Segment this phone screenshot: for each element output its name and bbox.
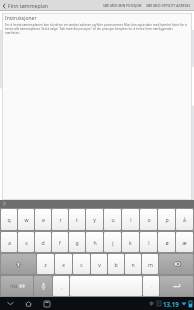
staticText: Instruksjoner [5,15,37,22]
button[interactable]: Skjul tastatur [6,299,15,308]
button[interactable]: i [122,209,139,230]
button[interactable]: h [86,232,103,252]
staticText: b [114,261,118,268]
button[interactable]: Flere forslag [0,200,8,207]
staticText: k [129,239,132,246]
staticText: o [147,216,151,223]
staticText: x [62,261,65,268]
staticText: v [98,261,101,268]
staticText: a [8,239,11,246]
button[interactable]: å [176,209,193,230]
button[interactable]: p [158,209,175,230]
button[interactable]: SØK MED MIN POSISJON [101,0,144,11]
button[interactable]: b [108,254,124,274]
button[interactable] [70,276,142,296]
button[interactable]: y [86,209,103,230]
button[interactable]: o [140,209,157,230]
button[interactable]: v [91,254,107,274]
button[interactable]: Enter [160,276,193,296]
staticText: w [24,216,29,223]
button[interactable]: g [69,232,85,252]
staticText: g [75,239,79,246]
button[interactable]: Oversikt [42,299,51,308]
button[interactable]: w [18,209,34,230]
staticText: i [130,216,132,223]
staticText: u [111,216,115,223]
staticText: SØK MED OPPGITT ADRESSE [146,4,191,8]
staticText: l [148,239,150,246]
staticText: q [7,216,11,223]
staticText: p [165,216,169,223]
staticText: For å hente tømmeplanen kan du skrive in… [5,23,189,35]
button[interactable]: e [35,209,51,230]
button[interactable]: n [125,254,141,274]
button[interactable]: c [73,254,90,274]
staticText: . [151,284,152,289]
button[interactable]: Shift [1,254,36,274]
button[interactable]: t [69,209,85,230]
staticText: m [148,261,153,268]
button[interactable]: æ [176,232,193,252]
button[interactable]: a [1,232,17,252]
staticText: z [44,261,47,268]
button[interactable]: Taleinndata [34,276,52,296]
staticText: h [93,239,97,246]
button[interactable]: l [140,232,157,252]
staticText: n [131,261,135,268]
button[interactable]: x [55,254,72,274]
staticText: f [59,239,61,246]
button[interactable]: s [18,232,34,252]
button[interactable]: j [104,232,121,252]
button[interactable]: SØK MED OPPGITT ADRESSE [144,0,193,11]
button[interactable]: m [142,254,158,274]
button[interactable]: d [35,232,51,252]
button[interactable]: Symboler [1,276,33,296]
staticText: c [80,261,83,268]
staticText: s [25,239,28,246]
staticText: t [76,216,78,223]
button[interactable]: . [143,276,159,296]
staticText: y [93,216,96,223]
button[interactable]: ø [158,232,175,252]
button[interactable]: Slett [159,254,193,274]
staticText: å [183,216,186,223]
button[interactable]: u [104,209,121,230]
button[interactable]: Hjem [24,299,33,308]
staticText: ?123 [10,284,18,288]
button[interactable]: k [122,232,139,252]
staticText: , [61,284,62,289]
staticText: æ [182,239,187,246]
button[interactable]: Finn tømmeplan [0,0,53,11]
staticText: d [41,239,45,246]
button[interactable]: f [52,232,68,252]
staticText: 13.19 [163,300,179,308]
button[interactable]: r [52,209,68,230]
button[interactable]: q [1,209,17,230]
staticText: j [112,239,114,246]
staticText: r [59,216,62,223]
staticText: e [42,216,45,223]
staticText: Finn tømmeplan [8,2,49,9]
staticText: ø [165,239,169,246]
staticText: SØK MED MIN POSISJON [103,4,142,8]
button[interactable]: z [37,254,54,274]
button[interactable]: , [53,276,69,296]
